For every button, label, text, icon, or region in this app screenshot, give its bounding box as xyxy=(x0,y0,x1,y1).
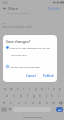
staticText: k xyxy=(51,94,53,98)
staticText: Title xyxy=(2,21,7,24)
staticText: s xyxy=(13,94,15,98)
button[interactable]: g xyxy=(31,93,37,98)
staticText: z xyxy=(10,101,12,105)
staticText: 9:41 xyxy=(2,1,8,5)
button[interactable]: Shift xyxy=(0,100,7,105)
button[interactable]: Update existing message xyxy=(6,64,57,68)
button[interactable]: Symbols xyxy=(1,107,7,112)
staticText: Warn xyxy=(8,6,19,11)
staticText: g xyxy=(33,94,35,98)
button[interactable]: c xyxy=(22,100,29,105)
staticText: n xyxy=(46,101,48,105)
button[interactable]: s xyxy=(10,93,17,98)
button[interactable]: e xyxy=(15,86,21,91)
staticText: x xyxy=(18,101,20,105)
button[interactable]: p xyxy=(57,86,63,91)
staticText: Message title xyxy=(11,53,27,56)
staticText: p xyxy=(59,87,61,91)
button[interactable]: Message title xyxy=(11,52,55,59)
button[interactable]: Save as a new message for the list xyxy=(6,45,57,49)
button[interactable]: Enter xyxy=(56,107,63,112)
staticText: . xyxy=(54,107,55,111)
staticText: d xyxy=(20,94,22,98)
staticText: y xyxy=(35,87,37,91)
staticText: m xyxy=(52,101,55,105)
button[interactable]: h xyxy=(37,93,43,98)
staticText: t xyxy=(29,87,31,91)
button[interactable]: x xyxy=(15,100,22,105)
button[interactable]: y xyxy=(33,86,39,91)
staticText: q xyxy=(4,87,6,91)
staticText: Uncomfortable with xyxy=(2,25,32,29)
staticText: Publish xyxy=(43,74,54,78)
button[interactable]: Emoji xyxy=(8,106,12,112)
button[interactable]: Backspace xyxy=(57,100,64,105)
button[interactable]: n xyxy=(43,100,50,105)
button[interactable]: w xyxy=(8,86,15,91)
button[interactable]: f xyxy=(24,93,31,98)
staticText: j xyxy=(46,94,47,98)
staticText: r xyxy=(23,87,25,91)
button[interactable]: u xyxy=(39,86,45,91)
button[interactable]: t xyxy=(27,86,33,91)
staticText: f xyxy=(27,94,29,98)
staticText: l xyxy=(58,94,59,98)
button[interactable]: Publish xyxy=(47,6,62,11)
button[interactable]: Publish xyxy=(41,73,56,79)
button[interactable]: v xyxy=(29,100,36,105)
button[interactable]: q xyxy=(1,86,8,91)
button[interactable]: j xyxy=(43,93,49,98)
button[interactable]: Cancel xyxy=(24,73,38,79)
staticText: u xyxy=(41,87,43,91)
staticText: c xyxy=(25,101,27,105)
staticText: v xyxy=(32,101,34,105)
staticText: b xyxy=(39,101,41,105)
staticText: Cancel xyxy=(26,74,36,78)
button[interactable]: m xyxy=(50,100,57,105)
staticText: h xyxy=(39,94,41,98)
button[interactable]: b xyxy=(36,100,43,105)
staticText: Update existing message xyxy=(10,65,40,68)
button[interactable]: l xyxy=(55,93,61,98)
button[interactable]: d xyxy=(17,93,24,98)
button[interactable]: i xyxy=(45,86,51,91)
staticText: ?123 xyxy=(2,108,7,111)
staticText: i xyxy=(48,87,49,91)
staticText: Save as a new message for the list xyxy=(10,46,51,49)
staticText: Notify the recipients xyxy=(7,11,30,14)
staticText: w xyxy=(10,87,13,91)
staticText: a xyxy=(6,94,8,98)
staticText: e xyxy=(17,87,19,91)
staticText: o xyxy=(53,87,55,91)
button[interactable]: a xyxy=(3,93,10,98)
button[interactable]: o xyxy=(51,86,57,91)
staticText: Publish xyxy=(48,6,61,11)
button[interactable]: k xyxy=(49,93,55,98)
button[interactable]: r xyxy=(21,86,27,91)
staticText: Save changes? xyxy=(6,39,31,44)
button[interactable]: Back xyxy=(2,6,7,11)
button[interactable]: z xyxy=(7,100,15,105)
